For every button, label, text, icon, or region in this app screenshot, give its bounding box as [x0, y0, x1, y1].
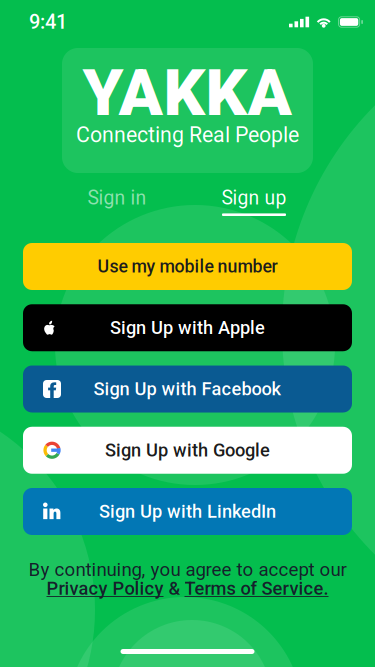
button[interactable]: Sign Up with Facebook — [23, 365, 352, 412]
button[interactable]: Use my mobile number — [23, 243, 352, 290]
button[interactable]: Sign Up with Google — [23, 427, 352, 474]
staticText: Sign in — [87, 187, 146, 209]
button[interactable]: Sign in — [70, 188, 164, 216]
staticText: Connecting Real People — [76, 122, 299, 147]
staticText: Sign Up with Apple — [110, 317, 265, 338]
staticText: 9:41 — [29, 10, 67, 34]
staticText: Use my mobile number — [97, 256, 277, 277]
staticText: YAKKA — [82, 55, 292, 131]
staticText: Sign up — [221, 187, 286, 209]
button[interactable]: Sign Up with LinkedIn — [23, 488, 352, 535]
staticText: By continuing, you agree to accept our — [28, 559, 346, 580]
button[interactable]: Sign up — [207, 188, 301, 216]
button[interactable]: Sign Up with Apple — [23, 304, 352, 351]
staticText: Privacy Policy & Terms of Service. — [46, 578, 328, 599]
button[interactable]: Privacy Policy & Terms of Service. — [46, 578, 328, 599]
staticText: Sign Up with Google — [105, 439, 270, 461]
staticText: Sign Up with LinkedIn — [99, 501, 276, 522]
staticText: Sign Up with Facebook — [93, 378, 281, 400]
